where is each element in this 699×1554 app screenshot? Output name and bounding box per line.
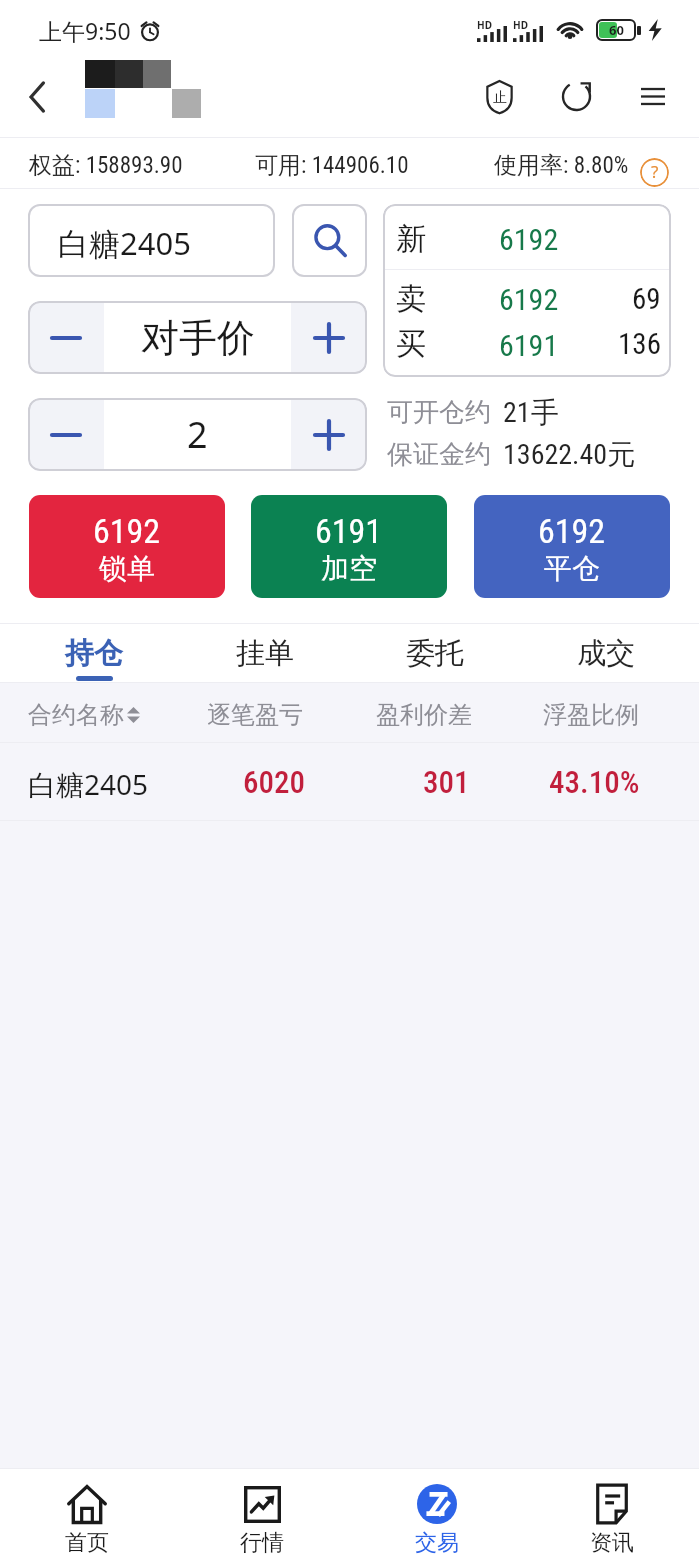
staticText: 权益: 158893.90: [29, 151, 183, 180]
staticText: 平仓: [544, 551, 600, 586]
button[interactable]: 6192: [29, 495, 225, 598]
staticText: 止: [493, 89, 507, 107]
staticText: 使用率: 8.80%: [494, 151, 629, 180]
staticText: 盈利价差: [376, 700, 472, 730]
button[interactable]: 白糖2405: [0, 743, 699, 820]
staticText: ?: [651, 160, 659, 183]
staticText: 60: [609, 21, 624, 39]
staticText: 6192: [538, 511, 606, 551]
button[interactable]: Increase: [291, 398, 367, 471]
staticText: 21手: [503, 395, 559, 429]
staticText: 首页: [65, 1529, 109, 1554]
button[interactable]: 持仓: [9, 624, 179, 682]
staticText: 新: [396, 220, 426, 258]
button[interactable]: 白糖2405: [28, 204, 275, 277]
button[interactable]: 交易: [349, 1469, 524, 1554]
staticText: 69: [632, 282, 661, 316]
staticText: 可开仓约: [387, 396, 491, 429]
button[interactable]: 新: [383, 204, 671, 377]
staticText: 委托: [406, 635, 464, 672]
staticText: 对手价: [141, 314, 255, 362]
staticText: 上午9:50: [39, 15, 131, 46]
staticText: HD: [477, 18, 492, 32]
staticText: 白糖2405: [58, 222, 191, 264]
button[interactable]: Refresh: [537, 56, 615, 137]
button[interactable]: Decrease: [28, 398, 104, 471]
button[interactable]: 首页: [0, 1469, 174, 1554]
staticText: 行情: [240, 1529, 284, 1554]
staticText: 交易: [415, 1529, 459, 1554]
staticText: 合约名称: [28, 700, 124, 730]
button[interactable]: Increase: [291, 301, 367, 374]
staticText: 买: [396, 325, 426, 363]
staticText: 浮盈比例: [543, 700, 639, 730]
button[interactable]: Stop loss setting: [461, 56, 537, 137]
button[interactable]: 6192: [474, 495, 670, 598]
staticText: 6020: [243, 764, 305, 800]
staticText: 6192: [93, 511, 161, 551]
button[interactable]: 挂单: [180, 624, 350, 682]
button[interactable]: Back: [0, 56, 74, 137]
button[interactable]: 资讯: [524, 1469, 699, 1554]
staticText: 加空: [321, 551, 377, 586]
button[interactable]: Menu: [615, 56, 691, 137]
staticText: 6192: [499, 282, 559, 317]
staticText: 43.10%: [549, 764, 640, 800]
staticText: 6192: [499, 222, 559, 257]
button[interactable]: 委托: [350, 624, 520, 682]
staticText: 保证金约: [387, 438, 491, 471]
button[interactable]: 成交: [521, 624, 691, 682]
button[interactable]: Search: [292, 204, 367, 277]
staticText: 卖: [396, 280, 426, 318]
staticText: 可用: 144906.10: [255, 151, 409, 180]
staticText: 锁单: [99, 551, 155, 586]
staticText: HD: [513, 18, 528, 32]
staticText: 成交: [577, 635, 635, 672]
staticText: 资讯: [590, 1529, 634, 1554]
staticText: 逐笔盈亏: [207, 700, 303, 730]
button[interactable]: Decrease: [28, 301, 104, 374]
button[interactable]: Help: [640, 158, 669, 187]
staticText: 136: [618, 327, 661, 361]
staticText: 2: [187, 410, 208, 459]
staticText: 6191: [315, 511, 383, 551]
staticText: 301: [423, 764, 470, 800]
staticText: 6191: [499, 328, 559, 363]
staticText: 挂单: [236, 635, 294, 672]
button[interactable]: 行情: [174, 1469, 349, 1554]
staticText: 13622.40元: [503, 437, 636, 471]
staticText: 白糖2405: [28, 765, 149, 803]
button[interactable]: 6191: [251, 495, 447, 598]
staticText: 持仓: [65, 635, 123, 672]
